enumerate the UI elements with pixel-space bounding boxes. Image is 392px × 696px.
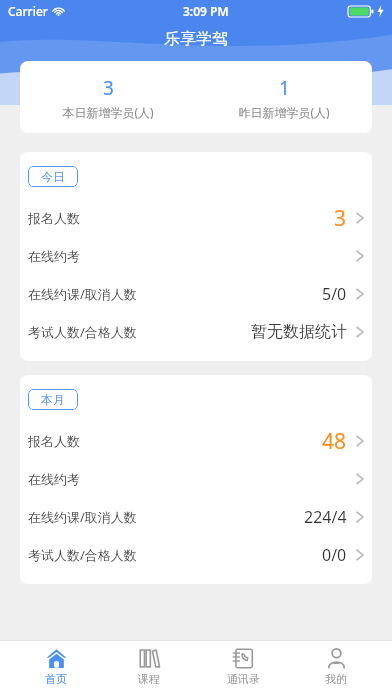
button[interactable]: 在线约考: [20, 237, 372, 275]
other: 首页: [46, 648, 67, 669]
staticText: 在线约课/取消人数: [28, 285, 137, 303]
staticText: 通讯录: [227, 672, 260, 686]
staticText: 在线约考: [28, 248, 80, 264]
staticText: 考试人数/合格人数: [28, 323, 137, 341]
button[interactable]: 在线约课/取消人数: [20, 498, 372, 536]
staticText: 在线约课/取消人数: [28, 508, 137, 526]
staticText: 考试人数/合格人数: [28, 546, 137, 564]
other: 通讯录: [233, 648, 254, 669]
staticText: 3: [103, 75, 114, 101]
staticText: 本月: [41, 392, 65, 407]
button[interactable]: 本月: [28, 389, 78, 410]
staticText: 0/0: [322, 544, 347, 566]
button[interactable]: 1: [196, 61, 372, 133]
button[interactable]: 课程: [112, 640, 186, 696]
staticText: 首页: [45, 672, 67, 686]
staticText: 3:09 PM: [183, 3, 229, 19]
staticText: 课程: [138, 672, 160, 686]
button[interactable]: 在线约课/取消人数: [20, 275, 372, 313]
button[interactable]: 首页: [19, 640, 93, 696]
staticText: 5/0: [322, 283, 347, 305]
staticText: 报名人数: [28, 433, 80, 449]
staticText: 本日新增学员(人): [62, 104, 154, 120]
staticText: 1: [279, 75, 290, 101]
staticText: 48: [322, 427, 347, 456]
other: 我的: [326, 648, 347, 669]
staticText: 昨日新增学员(人): [238, 104, 330, 120]
other: 课程: [139, 648, 160, 669]
button[interactable]: 我的: [299, 640, 373, 696]
staticText: 3: [334, 204, 347, 233]
button[interactable]: 在线约考: [20, 460, 372, 498]
button[interactable]: 3: [20, 61, 196, 133]
staticText: 暂无数据统计: [251, 322, 347, 342]
button[interactable]: 考试人数/合格人数: [20, 536, 372, 574]
staticText: Carrier: [8, 3, 48, 19]
staticText: 报名人数: [28, 210, 80, 226]
staticText: 今日: [41, 169, 65, 184]
button[interactable]: 考试人数/合格人数: [20, 313, 372, 351]
staticText: 在线约考: [28, 471, 80, 487]
button[interactable]: 3: [20, 61, 372, 133]
button[interactable]: 通讯录: [206, 640, 280, 696]
staticText: 我的: [325, 672, 347, 686]
button[interactable]: 报名人数: [20, 422, 372, 460]
staticText: 乐享学驾: [164, 29, 228, 49]
button[interactable]: 报名人数: [20, 199, 372, 237]
staticText: 224/4: [304, 506, 347, 528]
button[interactable]: 今日: [28, 166, 78, 187]
